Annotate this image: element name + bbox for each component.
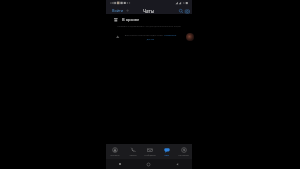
button[interactable]: Настройки: [175, 144, 192, 159]
button[interactable]: Звонки: [124, 144, 141, 159]
button[interactable]: Search: [178, 8, 184, 14]
staticText: Чаты: [164, 154, 169, 157]
staticText: Контакты: [110, 154, 120, 157]
staticText: Нажмите и удерживайте чат для дополнител…: [108, 25, 190, 28]
button[interactable]: Back: [163, 159, 192, 169]
button[interactable]: Camera: [184, 8, 190, 14]
staticText: Настройки: [178, 154, 189, 157]
button[interactable]: Войти: [112, 8, 129, 13]
staticText: Войти: [112, 8, 124, 13]
button[interactable]: Recents: [106, 159, 134, 169]
staticText: Ваш список контактов недоступен. Разреши…: [121, 34, 180, 41]
button[interactable]: Контакты: [106, 144, 124, 159]
staticText: Чаты: [143, 8, 155, 14]
button[interactable]: Сообщения: [141, 144, 158, 159]
staticText: Сообщения: [144, 154, 156, 157]
button[interactable]: Ваш список контактов недоступен. Разреши…: [106, 34, 192, 41]
button[interactable]: Home: [134, 159, 163, 169]
button[interactable]: В архиве: [106, 17, 192, 22]
staticText: В архиве: [122, 17, 140, 22]
staticText: Звонки: [129, 154, 137, 157]
button[interactable]: Чаты: [158, 144, 175, 159]
